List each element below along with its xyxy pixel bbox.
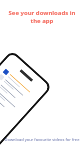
staticText: See your downloads in the app: [0, 9, 84, 25]
other: Phone preview of the downloads screen: [0, 53, 50, 150]
staticText: Download your favourite videos for free: [0, 137, 84, 142]
